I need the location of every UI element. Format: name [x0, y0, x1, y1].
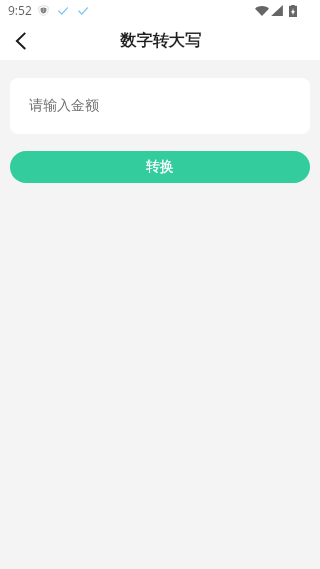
staticText: 数字转大写: [120, 30, 201, 50]
staticText: 请输入金额: [29, 97, 99, 115]
staticText: 转换: [146, 158, 174, 176]
button[interactable]: Back: [0, 21, 40, 60]
button[interactable]: 转换: [10, 151, 310, 183]
staticText: 9:52: [8, 2, 32, 18]
button[interactable]: 请输入金额: [10, 78, 310, 134]
